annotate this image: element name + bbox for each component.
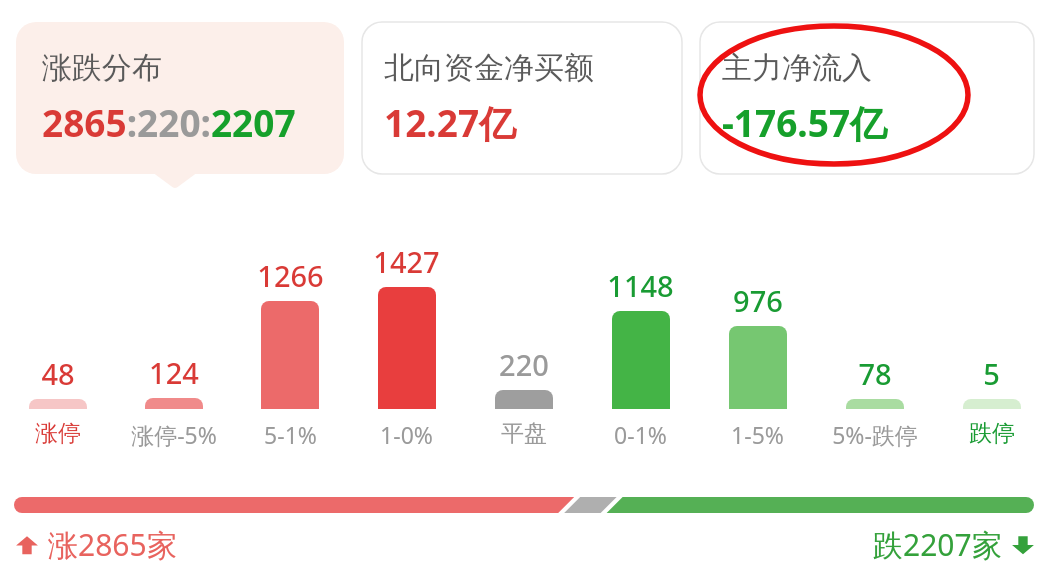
staticText: 跌2207家 bbox=[873, 524, 1002, 565]
staticText: 5-1% bbox=[264, 419, 317, 450]
staticText: 220 bbox=[499, 345, 549, 384]
button[interactable] bbox=[0, 495, 1050, 517]
other: Down bbox=[1010, 532, 1036, 558]
staticText: 976 bbox=[733, 281, 783, 320]
staticText: 2865:220:2207 bbox=[42, 97, 296, 147]
button[interactable]: 1148 bbox=[582, 196, 699, 464]
other: Up bbox=[14, 532, 40, 558]
button[interactable]: 976 bbox=[699, 196, 816, 464]
staticText: 涨2865家 bbox=[48, 524, 177, 565]
button[interactable]: 1266 bbox=[232, 196, 348, 464]
staticText: 5 bbox=[983, 354, 1000, 393]
staticText: 124 bbox=[149, 353, 199, 392]
button[interactable]: Up bbox=[14, 524, 185, 565]
staticText: 1148 bbox=[607, 266, 674, 305]
staticText: 1266 bbox=[257, 256, 324, 295]
staticText: 0-1% bbox=[614, 419, 667, 450]
button[interactable]: 220 bbox=[465, 196, 582, 464]
staticText: 北向资金净买额 bbox=[384, 49, 594, 87]
staticText: 涨停-5% bbox=[131, 419, 217, 450]
button[interactable]: 78 bbox=[816, 196, 933, 464]
button[interactable]: 5 bbox=[933, 196, 1050, 464]
button[interactable]: 涨跌分布 bbox=[16, 22, 344, 174]
staticText: 平盘 bbox=[501, 419, 547, 448]
staticText: 1-5% bbox=[731, 419, 784, 450]
staticText: 5%-跌停 bbox=[832, 419, 918, 450]
staticText: -176.57亿 bbox=[722, 97, 888, 148]
button[interactable]: 主力净流入 bbox=[700, 22, 1034, 174]
staticText: 涨跌分布 bbox=[42, 49, 162, 87]
staticText: 1-0% bbox=[380, 419, 433, 450]
staticText: 涨停 bbox=[35, 419, 81, 448]
button[interactable]: 124 bbox=[116, 196, 232, 464]
staticText: 1427 bbox=[373, 242, 440, 281]
staticText: 48 bbox=[41, 354, 75, 393]
staticText: 跌停 bbox=[969, 419, 1015, 448]
button[interactable]: 北向资金净买额 bbox=[362, 22, 682, 174]
button[interactable]: 48 bbox=[0, 196, 116, 464]
button[interactable]: 跌2207家 bbox=[865, 524, 1036, 565]
staticText: 78 bbox=[858, 354, 892, 393]
staticText: 主力净流入 bbox=[722, 49, 872, 87]
button[interactable]: 1427 bbox=[348, 196, 465, 464]
staticText: 12.27亿 bbox=[384, 97, 517, 148]
